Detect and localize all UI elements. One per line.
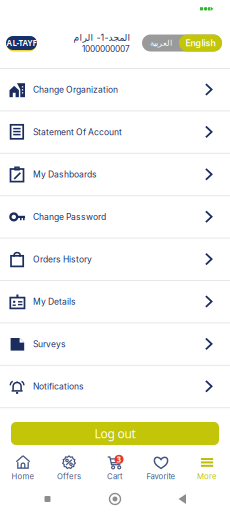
staticText: العربية bbox=[149, 38, 171, 48]
staticText: My Details bbox=[33, 296, 76, 307]
button[interactable]: Recent apps bbox=[27, 487, 67, 511]
staticText: My Dashboards bbox=[33, 169, 97, 180]
staticText: Notifications bbox=[33, 381, 84, 392]
button[interactable]: Orders History bbox=[0, 239, 230, 281]
staticText: Favorite bbox=[146, 472, 175, 481]
button[interactable]: Favorite bbox=[138, 451, 184, 485]
staticText: AL-TAYF bbox=[6, 38, 36, 48]
button[interactable]: Statement Of Account bbox=[0, 111, 230, 154]
button[interactable]: More bbox=[184, 451, 230, 485]
button[interactable]: Notifications bbox=[0, 366, 230, 408]
staticText: Cart bbox=[107, 472, 123, 481]
button[interactable]: 3 bbox=[92, 451, 138, 485]
button[interactable]: Change Organization bbox=[0, 69, 230, 111]
button[interactable]: My Dashboards bbox=[0, 154, 230, 196]
staticText: More bbox=[197, 472, 217, 481]
button[interactable]: Surveys bbox=[0, 323, 230, 366]
staticText: Change Password bbox=[33, 212, 106, 222]
staticText: 3 bbox=[116, 454, 121, 465]
staticText: Surveys bbox=[33, 339, 66, 349]
staticText: Statement Of Account bbox=[33, 127, 122, 137]
button[interactable]: Home bbox=[0, 451, 46, 485]
button[interactable]: English bbox=[179, 34, 222, 51]
staticText: المجد-1- الرام bbox=[73, 32, 130, 43]
staticText: Log out bbox=[94, 425, 135, 441]
staticText: Home bbox=[11, 472, 34, 481]
button[interactable]: Change Password bbox=[0, 196, 230, 239]
button[interactable]: My Details bbox=[0, 281, 230, 323]
staticText: Offers bbox=[57, 472, 81, 481]
button[interactable]: Offers bbox=[46, 451, 92, 485]
staticText: Change Organization bbox=[33, 84, 118, 95]
button[interactable]: العربية bbox=[142, 34, 179, 51]
button[interactable]: Back bbox=[162, 487, 202, 511]
staticText: 1000000007 bbox=[82, 44, 130, 54]
staticText: Orders History bbox=[33, 254, 92, 264]
button[interactable]: Log out bbox=[11, 422, 219, 445]
button[interactable]: Home bbox=[95, 487, 135, 511]
staticText: English bbox=[185, 38, 215, 48]
